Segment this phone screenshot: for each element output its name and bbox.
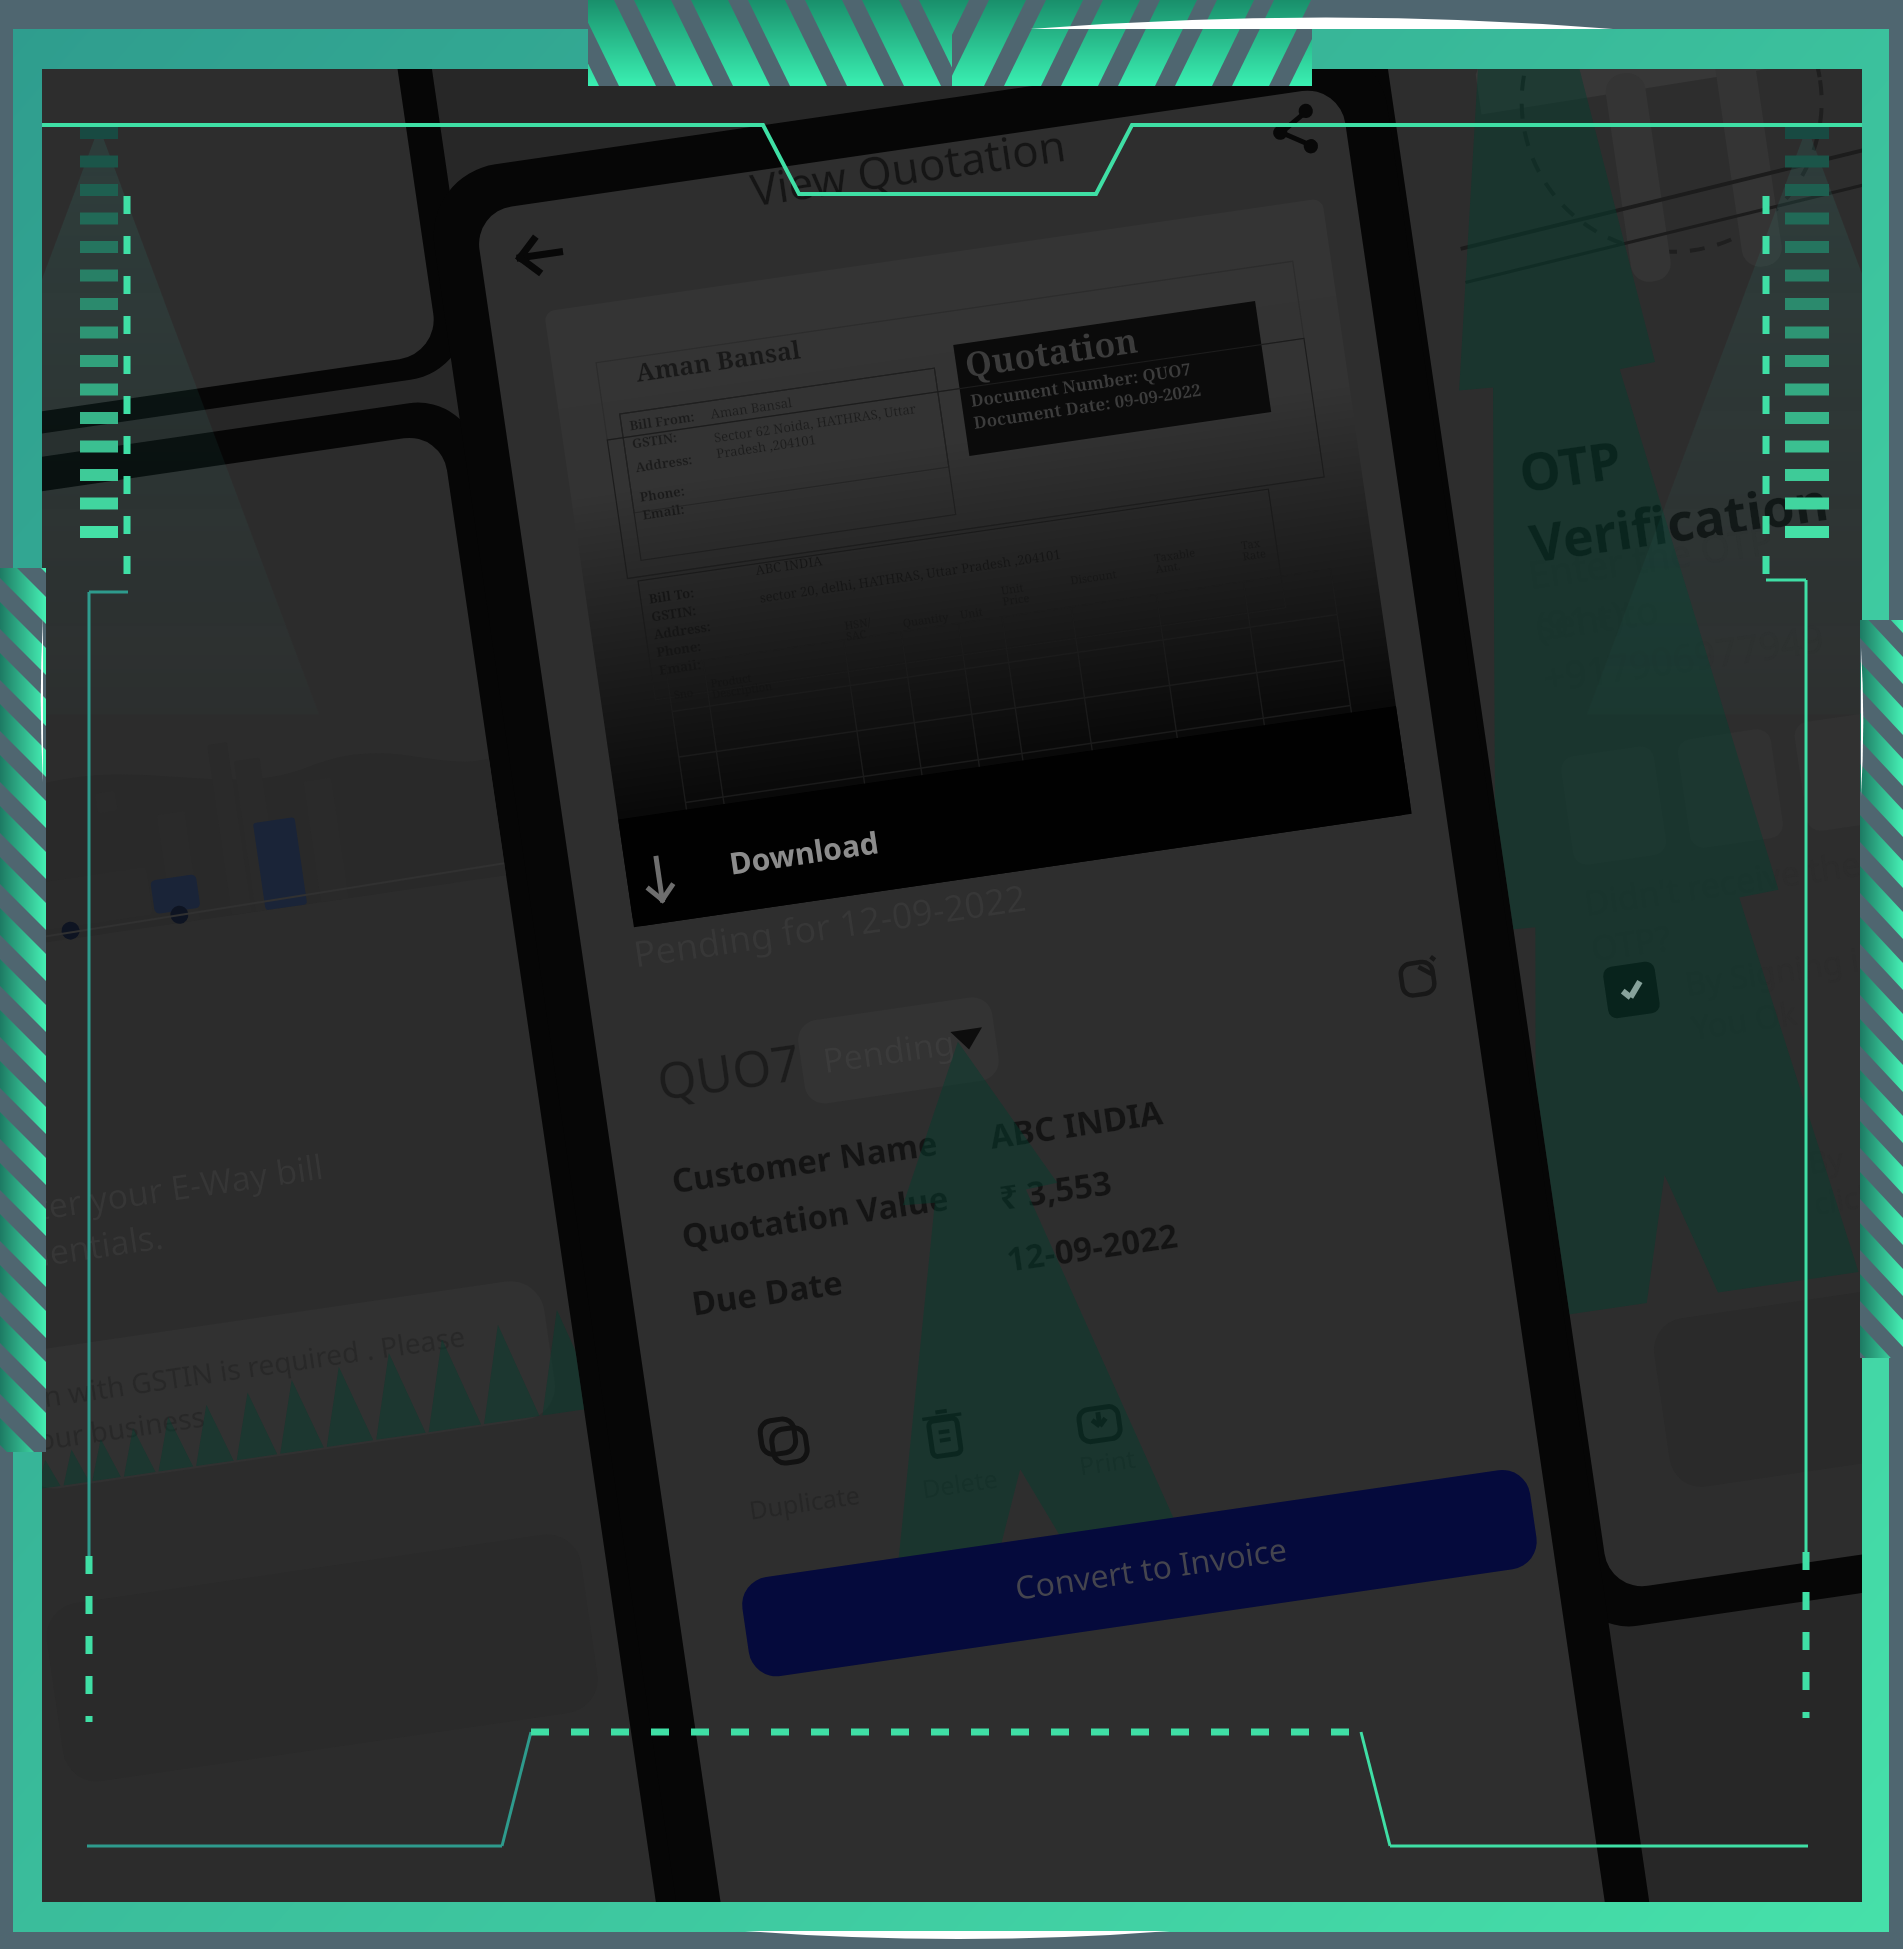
button[interactable]: Print	[1044, 1352, 1208, 1492]
button[interactable]: Back	[0, 0, 1903, 1949]
button[interactable]: Convert to Invoice	[742, 1462, 1528, 1698]
button[interactable]: Download	[620, 818, 1420, 938]
button[interactable]: Duplicate	[720, 1398, 896, 1538]
button[interactable]: Delete	[882, 1376, 1058, 1516]
button[interactable]: Share	[1246, 92, 1350, 188]
button[interactable]: Edit quotation	[1364, 944, 1468, 1040]
button[interactable]: Back	[482, 214, 592, 310]
button[interactable]: Pending	[780, 1020, 992, 1116]
